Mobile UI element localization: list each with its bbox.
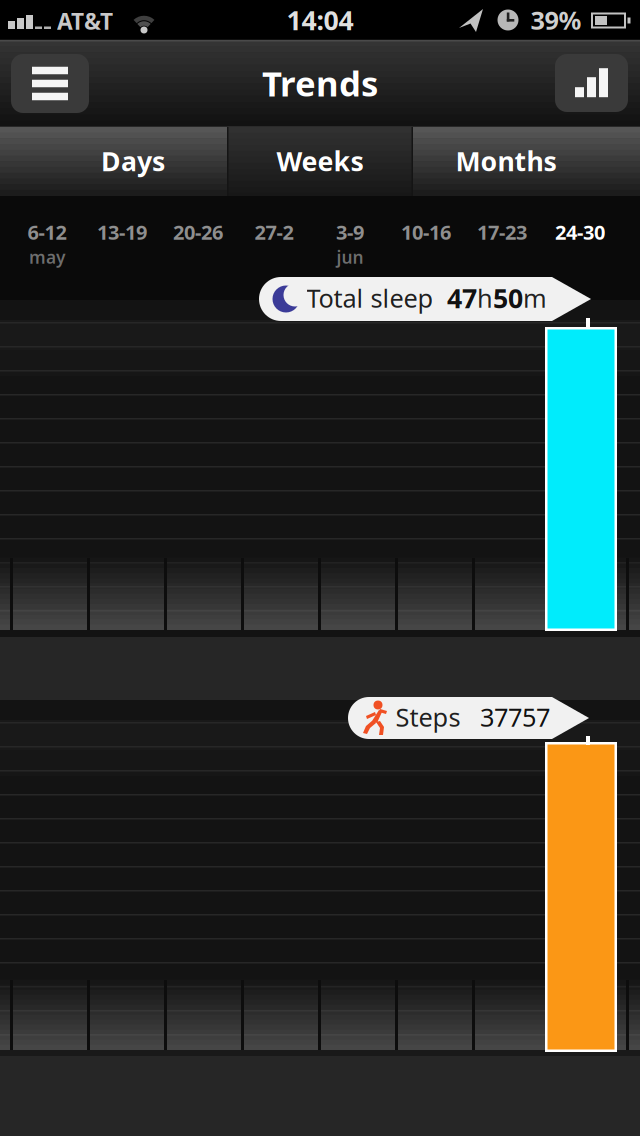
staticText: 13-19 [97, 219, 147, 245]
staticText: Steps [395, 700, 460, 734]
button[interactable]: 10-16 [388, 204, 464, 260]
button[interactable]: 6-12 [9, 204, 85, 260]
staticText: AT&T [57, 6, 113, 36]
staticText: Trends [262, 60, 378, 106]
staticText: 14:04 [286, 2, 353, 38]
button[interactable]: Months [416, 126, 596, 195]
staticText: 17-23 [477, 219, 527, 245]
staticText: 3-9 [336, 219, 364, 245]
button[interactable]: 17-23 [464, 204, 540, 260]
staticText: 10-16 [401, 219, 451, 245]
staticText: 50 [493, 280, 523, 316]
staticText: 24-30 [555, 219, 605, 245]
button[interactable]: Days [43, 126, 223, 195]
staticText: 37757 [480, 700, 550, 734]
button[interactable]: 3-9 [312, 204, 388, 260]
staticText: m [523, 281, 547, 315]
staticText: jun [336, 245, 363, 268]
button[interactable]: Statistics [555, 54, 628, 112]
staticText: 39% [530, 3, 581, 37]
button[interactable]: Weeks [228, 126, 412, 195]
staticText: Total sleep [306, 281, 433, 315]
button[interactable]: 27-2 [236, 204, 312, 260]
staticText: 27-2 [254, 219, 293, 245]
button[interactable]: 24-30 [542, 204, 618, 260]
staticText: may [29, 245, 65, 268]
staticText: Weeks [276, 143, 363, 179]
button[interactable]: Menu [11, 54, 89, 113]
staticText: 20-26 [173, 219, 223, 245]
staticText: Days [101, 143, 165, 179]
staticText: 47 [447, 280, 477, 316]
staticText: h [477, 281, 493, 315]
button[interactable]: 20-26 [160, 204, 236, 260]
button[interactable]: 13-19 [84, 204, 160, 260]
staticText: 6-12 [27, 219, 66, 245]
staticText: Months [455, 143, 556, 179]
